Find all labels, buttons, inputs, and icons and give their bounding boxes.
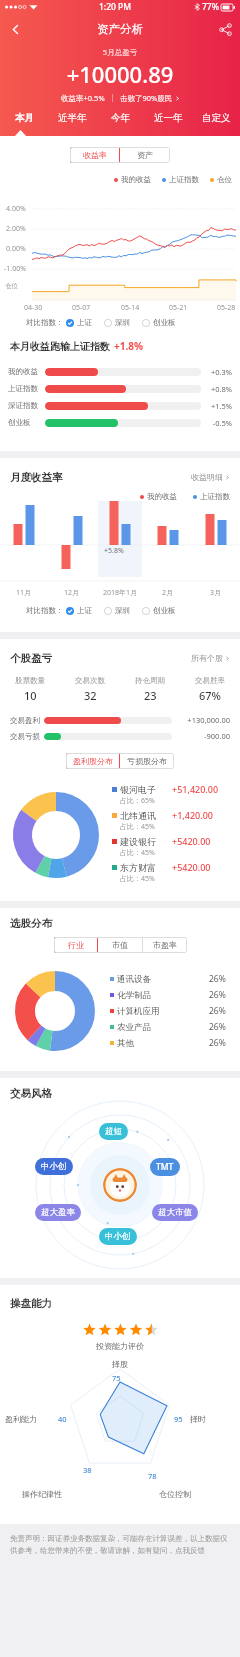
button[interactable]: 收益明细: [191, 470, 230, 484]
button[interactable]: 深圳: [104, 606, 130, 615]
staticText: 持仓周期: [135, 676, 165, 685]
button[interactable]: 超大盈率: [35, 1204, 81, 1221]
staticText: 计算机应用: [117, 1006, 160, 1017]
staticText: 3月: [210, 588, 222, 598]
staticText: 对比指数：: [26, 606, 64, 615]
staticText: TMT: [156, 1161, 174, 1173]
staticText: 95: [174, 1414, 183, 1424]
staticText: 我的收益: [121, 175, 151, 184]
button[interactable]: Share: [210, 14, 240, 44]
staticText: +5.8%: [104, 546, 124, 556]
button[interactable]: 上证: [66, 318, 92, 327]
staticText: -900.00: [178, 731, 230, 741]
staticText: 26%: [209, 1005, 226, 1017]
staticText: 超大盈率: [41, 1207, 75, 1218]
button[interactable]: 本月: [0, 109, 48, 126]
button[interactable]: 资产: [120, 147, 170, 163]
staticText: 今年: [111, 112, 130, 124]
staticText: 5月总盈亏: [0, 47, 240, 57]
staticText: 创业板: [8, 418, 45, 427]
staticText: 近半年: [58, 112, 87, 124]
staticText: 75: [112, 1373, 121, 1383]
staticText: 其他: [117, 1038, 134, 1049]
button[interactable]: 今年: [96, 109, 144, 126]
button[interactable]: 市值: [98, 937, 142, 953]
staticText: 所有个股: [191, 653, 223, 663]
button[interactable]: Back: [0, 14, 30, 44]
staticText: 交易次数: [75, 676, 105, 685]
staticText: +1.8%: [114, 339, 143, 353]
staticText: 仓位: [5, 282, 18, 290]
staticText: 股票数量: [15, 676, 45, 685]
staticText: +0.3%: [206, 367, 232, 377]
staticText: 亏损股分布: [127, 756, 167, 766]
staticText: 操盘能力: [10, 1297, 52, 1310]
button[interactable]: 市盈率: [143, 937, 187, 953]
staticText: 交易胜率: [195, 676, 225, 685]
staticText: 上证: [77, 318, 92, 327]
staticText: 本月收益跑输上证指数: [10, 340, 110, 353]
staticText: 农业产品: [117, 1022, 151, 1033]
button[interactable]: 中小创: [35, 1158, 73, 1175]
staticText: +1,420.00: [172, 809, 234, 821]
staticText: -0.5%: [206, 418, 232, 428]
staticText: 26%: [209, 1021, 226, 1033]
staticText: +5420.00: [172, 861, 234, 873]
staticText: +0.8%: [206, 384, 232, 394]
staticText: 05-07: [72, 303, 91, 313]
button[interactable]: 击败了90%股民: [120, 93, 180, 103]
button[interactable]: 行业: [54, 937, 98, 953]
button[interactable]: 深圳: [104, 318, 130, 327]
button[interactable]: 自定义: [192, 109, 240, 126]
staticText: +51,420.00: [172, 783, 234, 795]
staticText: 创业板: [153, 318, 176, 327]
staticText: 选股分布: [10, 917, 52, 930]
button[interactable]: 超大市值: [152, 1204, 198, 1221]
staticText: 建设银行: [120, 836, 156, 847]
staticText: 上证指数: [200, 492, 230, 501]
staticText: 深圳: [115, 318, 130, 327]
staticText: 盈利股分布: [73, 756, 113, 766]
button[interactable]: 中小创: [99, 1228, 137, 1245]
staticText: 67%: [199, 688, 221, 703]
button[interactable]: 近半年: [48, 109, 96, 126]
button[interactable]: 创业板: [142, 318, 176, 327]
button[interactable]: 收益率: [70, 147, 120, 163]
button[interactable]: 创业板: [142, 606, 176, 615]
staticText: 占比：45%: [120, 822, 155, 832]
button[interactable]: 亏损股分布: [120, 753, 174, 769]
staticText: 创业板: [153, 606, 176, 615]
staticText: 12月: [64, 588, 80, 598]
staticText: +10000.89: [0, 59, 240, 89]
button[interactable]: 近一年: [144, 109, 192, 126]
staticText: 东方财富: [120, 862, 156, 873]
staticText: 26%: [209, 1037, 226, 1049]
button[interactable]: 所有个股: [191, 651, 230, 665]
staticText: 自定义: [202, 112, 231, 124]
staticText: 1:20 PM: [99, 1, 132, 13]
staticText: 中小创: [41, 1161, 67, 1172]
staticText: 击败了90%股民: [120, 93, 173, 103]
staticText: 04-30: [24, 303, 43, 313]
button[interactable]: 盈利股分布: [66, 753, 120, 769]
staticText: 资产分析: [97, 22, 143, 36]
staticText: 择时: [190, 1414, 206, 1424]
staticText: 4.00%: [6, 204, 26, 214]
staticText: 10: [24, 688, 37, 703]
button[interactable]: TMT: [150, 1158, 180, 1176]
staticText: 本月: [15, 112, 34, 124]
staticText: 40: [58, 1414, 67, 1424]
staticText: 仓位: [217, 175, 232, 184]
staticText: 77%: [202, 1, 219, 13]
staticText: 资产: [137, 150, 153, 160]
button[interactable]: 上证: [66, 606, 92, 615]
staticText: 2月: [162, 588, 174, 598]
staticText: 化学制品: [117, 990, 151, 1001]
staticText: 盈利能力: [5, 1414, 37, 1424]
staticText: +130,000.00: [178, 715, 230, 725]
staticText: 23: [144, 688, 157, 703]
button[interactable]: 超短: [99, 1123, 128, 1140]
staticText: 通讯设备: [117, 974, 151, 985]
staticText: 05-28: [217, 303, 236, 313]
staticText: 深证指数: [8, 401, 45, 410]
